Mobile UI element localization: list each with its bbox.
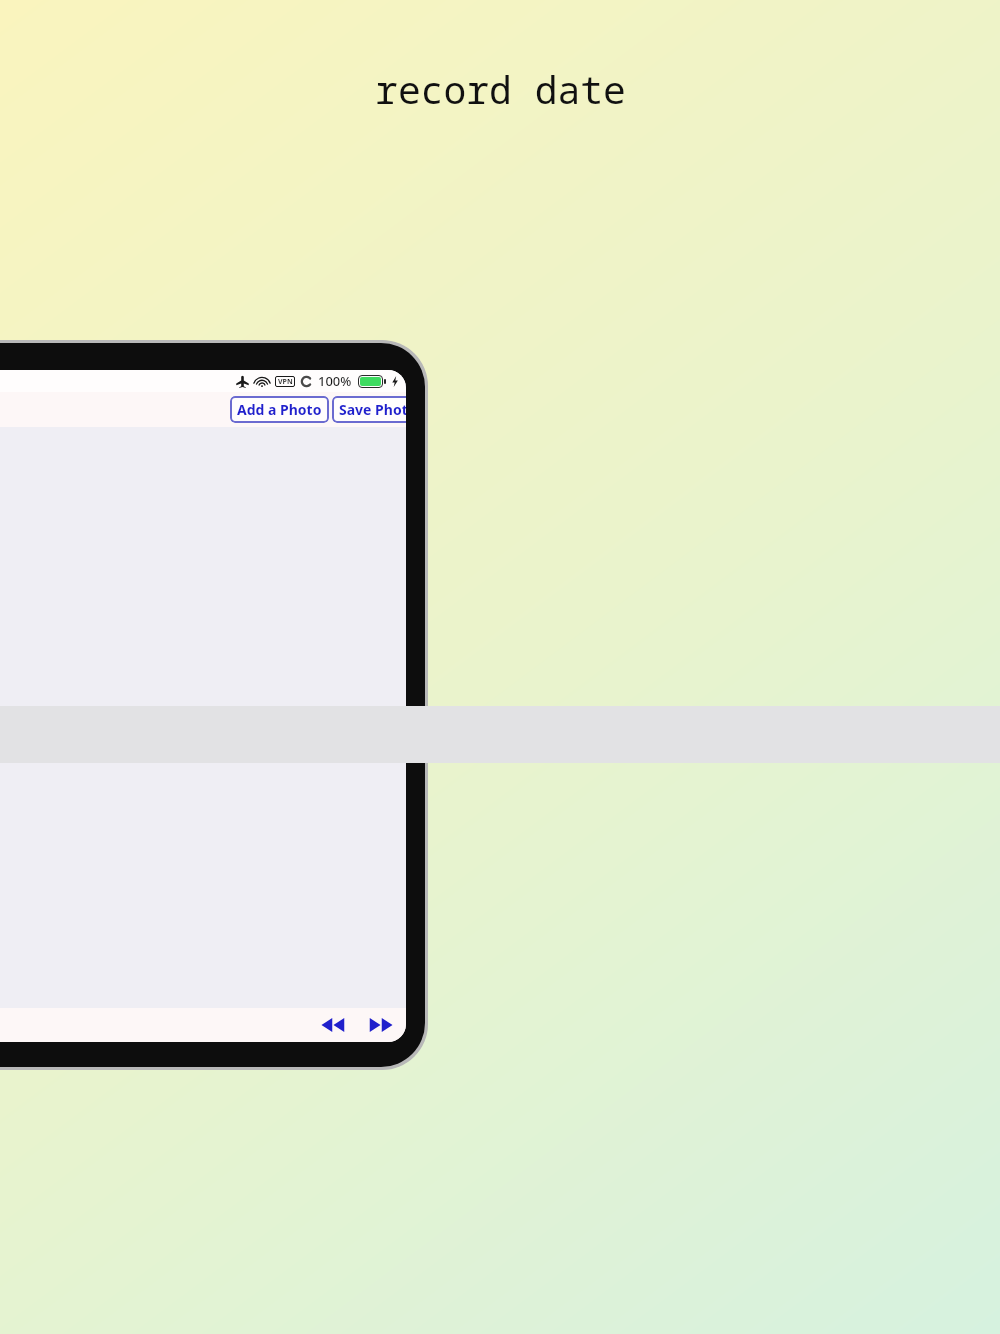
staticText: VPN: [278, 377, 293, 387]
button[interactable]: Previous photo: [318, 1013, 348, 1037]
button[interactable]: Save Photo: [332, 396, 406, 423]
button[interactable]: Next photo: [366, 1013, 396, 1037]
staticText: 100%: [318, 372, 352, 390]
button[interactable]: Add a Photo: [230, 396, 329, 423]
staticText: Add a Photo: [237, 400, 322, 419]
staticText: Save Photo: [339, 400, 406, 419]
staticText: record date: [375, 63, 626, 115]
